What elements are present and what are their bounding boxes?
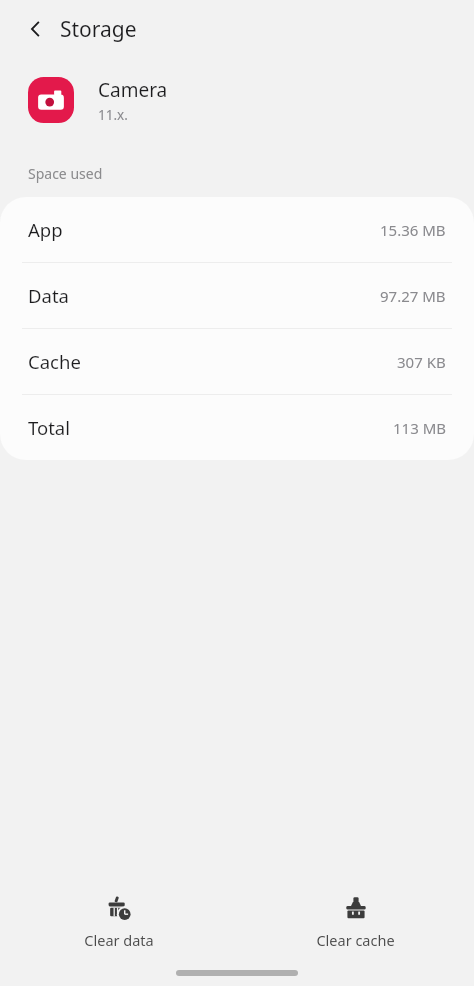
- staticText: Space used: [28, 164, 103, 183]
- staticText: Clear cache: [316, 930, 395, 950]
- staticText: Storage: [60, 15, 137, 44]
- staticText: Cache: [28, 349, 81, 374]
- button[interactable]: Total: [0, 395, 474, 460]
- staticText: Total: [28, 415, 71, 440]
- staticText: Data: [28, 283, 69, 308]
- button[interactable]: Cache: [0, 329, 474, 394]
- staticText: 113 MB: [393, 418, 446, 438]
- button[interactable]: App: [0, 197, 474, 262]
- button[interactable]: Clear cache: [237, 890, 474, 956]
- staticText: 97.27 MB: [380, 286, 446, 306]
- button[interactable]: Clear data: [0, 890, 237, 956]
- other: Clear cache: [343, 896, 369, 922]
- staticText: 307 KB: [397, 352, 446, 372]
- button[interactable]: Camera: [0, 58, 474, 142]
- other: Clear data: [106, 896, 132, 922]
- staticText: App: [28, 217, 63, 242]
- staticText: Clear data: [84, 930, 154, 950]
- button[interactable]: Back: [14, 7, 58, 51]
- staticText: 15.36 MB: [380, 220, 446, 240]
- staticText: Camera: [98, 77, 168, 103]
- button[interactable]: Data: [0, 263, 474, 328]
- staticText: 11.x.: [98, 106, 128, 124]
